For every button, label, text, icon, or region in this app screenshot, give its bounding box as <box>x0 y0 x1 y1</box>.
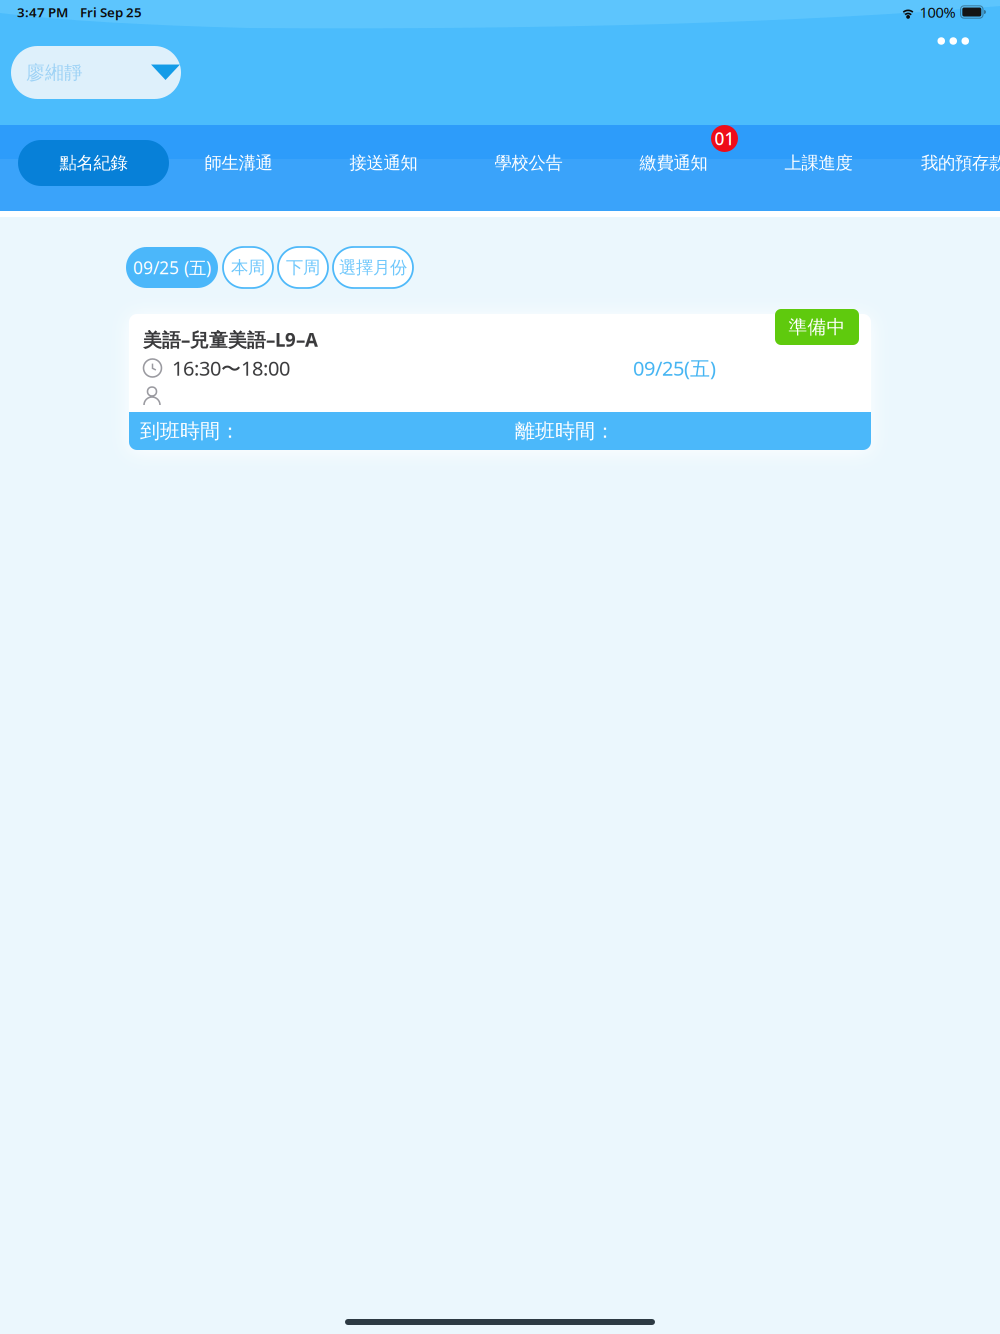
staticText: 01 <box>714 127 734 150</box>
staticText: 下周 <box>286 257 320 278</box>
staticText: 師生溝通 <box>204 152 272 174</box>
staticText: 09/25 (五) <box>133 256 211 279</box>
button[interactable]: 接送通知 <box>311 125 456 211</box>
staticText: 接送通知 <box>349 152 417 174</box>
button[interactable]: 09/25 (五) <box>126 247 218 288</box>
button[interactable]: 下周 <box>278 247 328 288</box>
button[interactable]: Multitasking controls <box>938 37 969 45</box>
staticText: 學校公告 <box>494 152 562 174</box>
staticText: 離班時間： <box>515 419 615 443</box>
staticText: 100% <box>920 2 956 22</box>
button[interactable]: 本周 <box>223 247 273 288</box>
staticText: 到班時間： <box>140 419 240 443</box>
staticText: 09/25(五) <box>633 355 716 381</box>
staticText: 16:30〜18:00 <box>172 355 290 381</box>
staticText: 3:47 PM <box>17 3 68 21</box>
button[interactable]: 點名紀錄 <box>21 125 166 211</box>
button[interactable]: 繳費通知 <box>601 125 746 211</box>
staticText: 廖緗靜 <box>26 61 83 84</box>
button[interactable]: 廖緗靜 <box>11 46 181 99</box>
button[interactable]: 師生溝通 <box>166 125 311 211</box>
staticText: 我的預存款 <box>921 152 1000 174</box>
staticText: 本周 <box>231 257 265 278</box>
staticText: Fri Sep 25 <box>80 3 142 21</box>
button[interactable]: 選擇月份 <box>333 247 413 288</box>
staticText: 上課進度 <box>784 152 852 174</box>
staticText: 美語–兒童美語–L9–A <box>143 327 318 352</box>
staticText: 點名紀錄 <box>59 152 127 174</box>
button[interactable]: 我的預存款 <box>891 125 1000 211</box>
button[interactable]: 學校公告 <box>456 125 601 211</box>
button[interactable]: 上課進度 <box>746 125 891 211</box>
staticText: 準備中 <box>788 315 845 338</box>
staticText: 選擇月份 <box>339 257 407 278</box>
staticText: 繳費通知 <box>639 152 707 174</box>
